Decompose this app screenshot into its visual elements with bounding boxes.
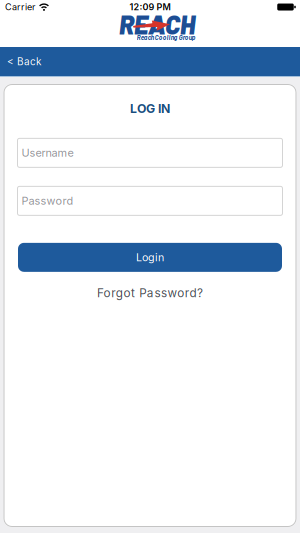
button[interactable]: Login [18, 243, 282, 272]
staticText: Forgot Password? [97, 286, 203, 300]
staticText: LOG IN [130, 101, 170, 116]
staticText: < Back [7, 55, 41, 68]
staticText: Carrier [5, 1, 35, 12]
staticText: Username [21, 146, 73, 159]
button[interactable]: < Back [0, 55, 41, 68]
button[interactable]: Username [17, 138, 283, 168]
staticText: 12:09 PM [129, 1, 170, 12]
staticText: Reach Cooling Group [137, 33, 196, 41]
button[interactable]: Password [17, 186, 283, 216]
staticText: Login [136, 251, 164, 264]
button[interactable]: Forgot Password? [97, 286, 203, 300]
staticText: Password [21, 194, 73, 207]
staticText: REACH [119, 9, 195, 39]
